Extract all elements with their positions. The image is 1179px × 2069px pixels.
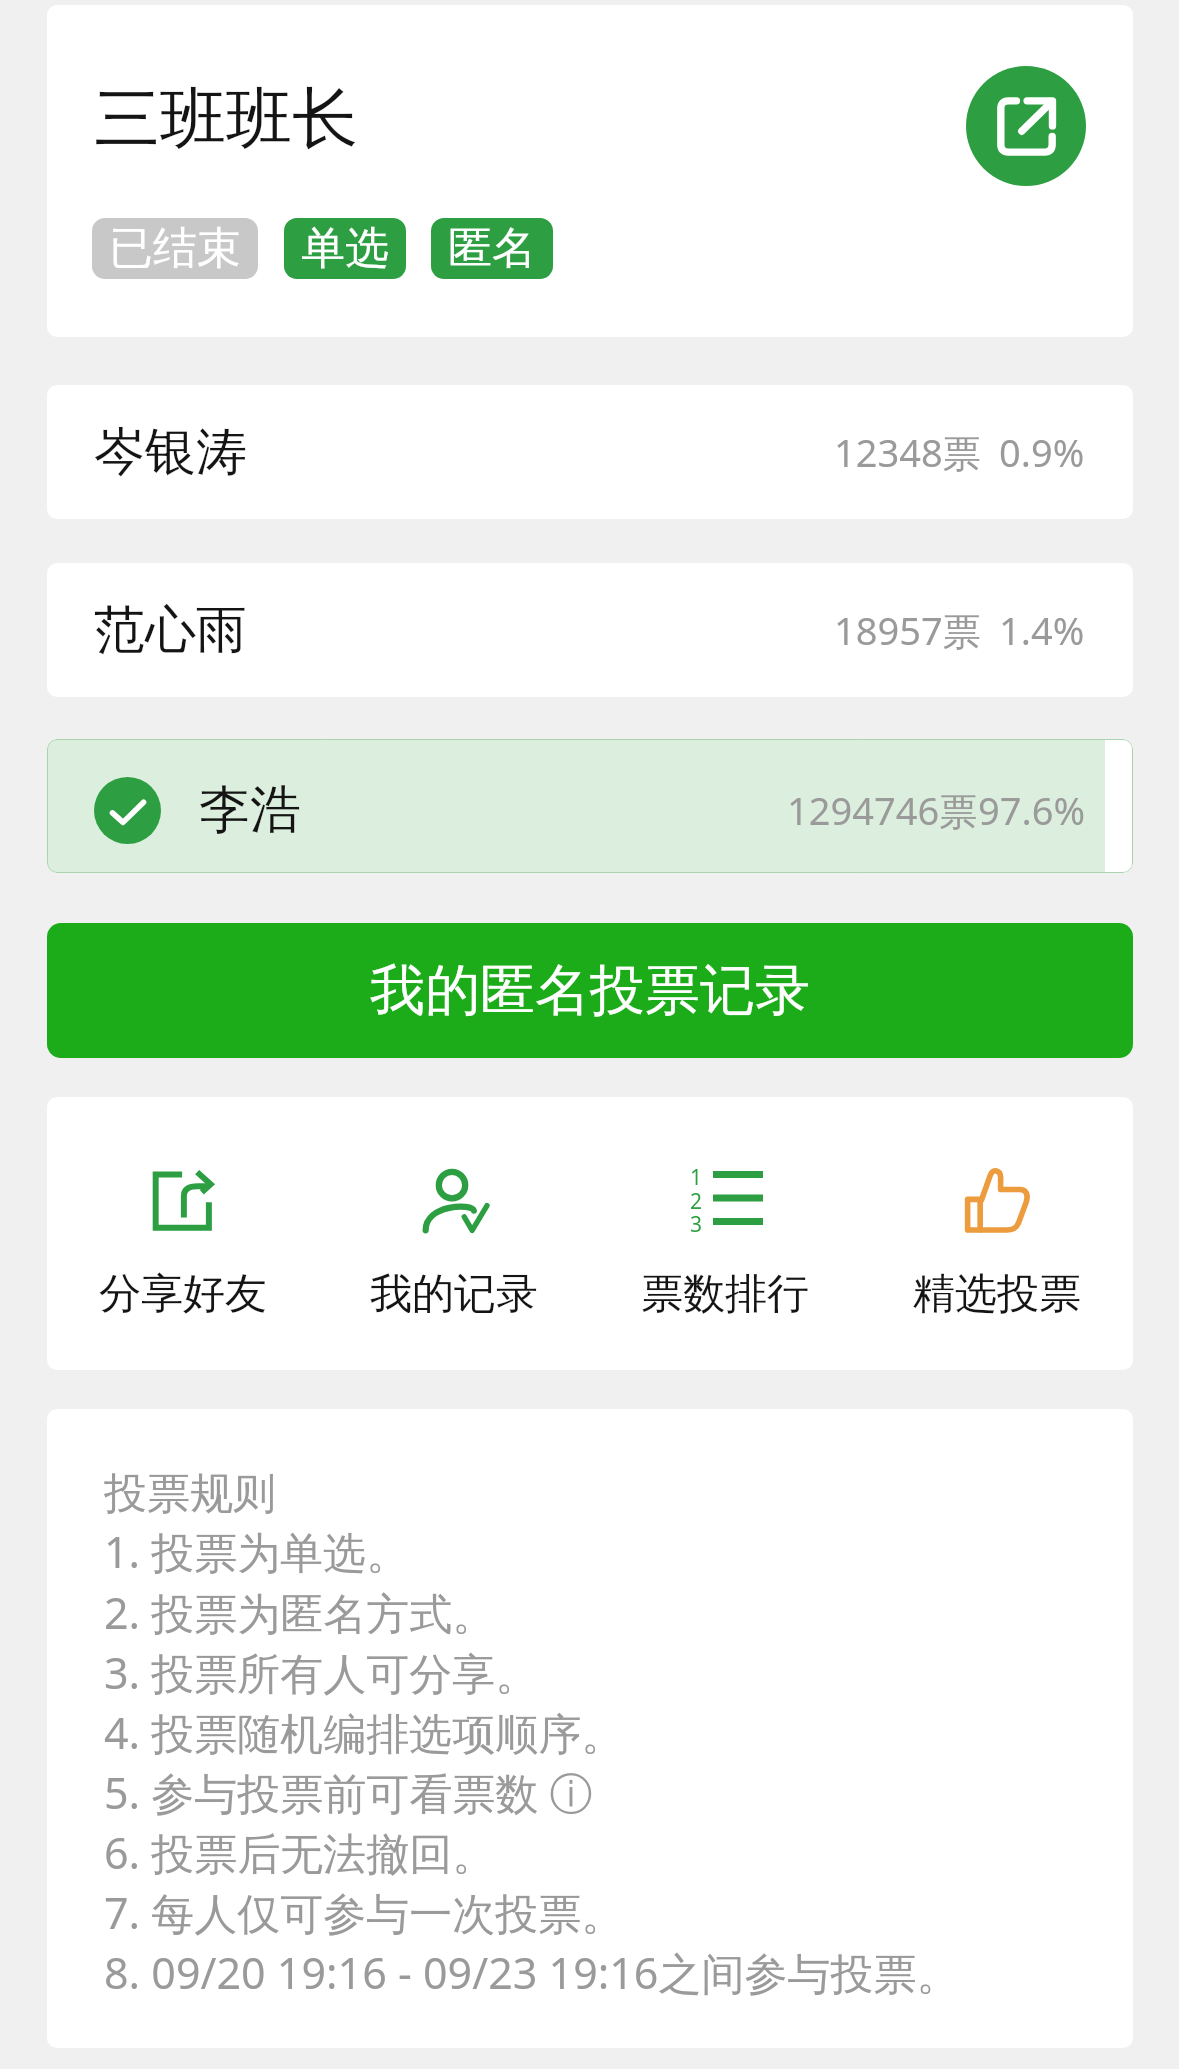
staticText: 2 [690,1187,703,1216]
staticText: 5. 参与投票前可看票数 ⓘ [104,1763,593,1822]
staticText: 7. 每人仅可参与一次投票。 [104,1883,625,1942]
button[interactable]: 岑银涛 [47,385,1133,519]
staticText: 3. 投票所有人可分享。 [104,1643,539,1702]
staticText: 1 [690,1163,703,1192]
staticText: 12348票 [834,426,981,478]
staticText: 6. 投票后无法撤回。 [104,1823,496,1882]
staticText: 票数排行 [641,1268,809,1321]
staticText: 李浩 [199,778,301,842]
staticText: 18957票 [834,604,981,656]
staticText: 我的记录 [370,1268,538,1321]
staticText: 投票规则 [104,1467,276,1521]
button[interactable]: 范心雨 [47,563,1133,697]
button[interactable]: 李浩 [47,739,1133,873]
staticText: 岑银涛 [94,420,247,484]
staticText: 97.6% [978,784,1085,836]
button[interactable]: 1 [589,1097,861,1370]
button[interactable]: 精选投票 [861,1097,1133,1370]
staticText: 精选投票 [913,1268,1081,1321]
button[interactable]: 分享好友 [47,1097,318,1370]
button[interactable]: 我的匿名投票记录 [47,923,1133,1058]
staticText: 匿名 [448,221,536,276]
staticText: 8. 09/20 19:16 - 09/23 19:16之间参与投票。 [104,1943,960,2002]
staticText: 分享好友 [99,1268,267,1321]
staticText: 3 [690,1210,703,1239]
button[interactable]: 我的记录 [318,1097,589,1370]
button[interactable]: Share [966,66,1086,186]
staticText: 单选 [301,221,389,276]
staticText: 2. 投票为匿名方式。 [104,1583,496,1642]
staticText: 三班班长 [94,77,358,160]
staticText: 1294746票 [787,784,978,836]
staticText: 范心雨 [94,598,247,662]
staticText: 0.9% [999,426,1085,478]
staticText: 1. 投票为单选。 [104,1522,410,1581]
staticText: 我的匿名投票记录 [370,956,810,1025]
staticText: 已结束 [109,221,241,276]
staticText: 1.4% [999,604,1085,656]
staticText: 4. 投票随机编排选项顺序。 [104,1703,625,1762]
